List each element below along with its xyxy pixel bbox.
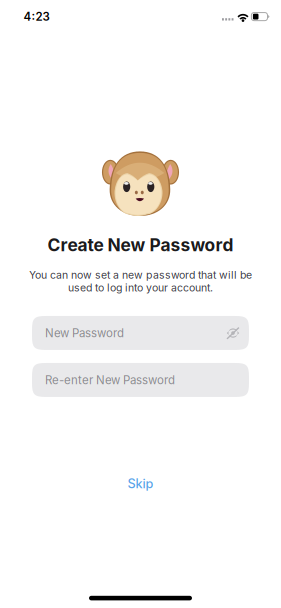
staticText: You can now set a new password that will…: [29, 268, 252, 281]
staticText: 4:23: [23, 10, 49, 23]
button[interactable]: Show password: [221, 320, 245, 346]
button[interactable]: Skip: [111, 470, 169, 497]
staticText: Re-enter New Password: [45, 373, 175, 387]
staticText: Create New Password: [47, 234, 233, 255]
staticText: New Password: [45, 326, 124, 340]
staticText: Skip: [127, 476, 153, 491]
staticText: used to log into your account.: [68, 281, 213, 294]
